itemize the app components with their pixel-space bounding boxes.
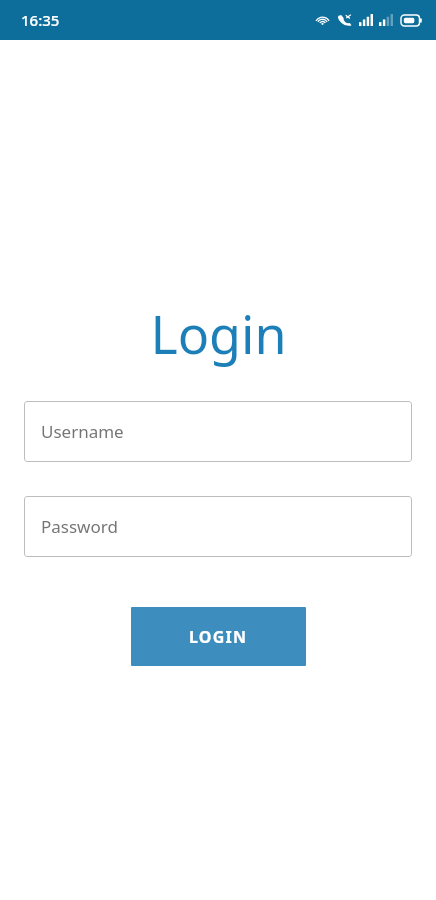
button[interactable]: LOGIN — [131, 607, 306, 666]
button[interactable]: Username — [24, 401, 412, 462]
staticText: 16:35 — [21, 10, 60, 30]
staticText: LOGIN — [189, 626, 248, 648]
staticText: Login — [150, 298, 287, 369]
staticText: Password — [41, 515, 118, 538]
staticText: Username — [41, 420, 124, 443]
button[interactable]: Password — [24, 496, 412, 557]
